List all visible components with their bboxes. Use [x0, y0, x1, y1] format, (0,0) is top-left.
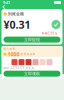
button[interactable]: Back — [1, 4, 7, 9]
staticText: 立即领取 — [24, 71, 40, 76]
staticText: 金币等你拿 — [20, 52, 35, 56]
staticText: 1000 — [7, 51, 19, 58]
button[interactable]: 立即领取 — [3, 71, 60, 77]
staticText: 9:41 — [3, 0, 10, 5]
staticText: 再领0.99元 — [41, 32, 57, 35]
staticText: 新人专享 — [3, 47, 15, 51]
button[interactable]: 立即提现 — [3, 37, 60, 43]
staticText: ¥0.31 — [3, 17, 30, 32]
staticText: 限时 23:59:59 后失效 — [3, 66, 34, 70]
staticText: 立即提现 — [24, 37, 40, 42]
staticText: 到账金额 — [8, 11, 24, 16]
